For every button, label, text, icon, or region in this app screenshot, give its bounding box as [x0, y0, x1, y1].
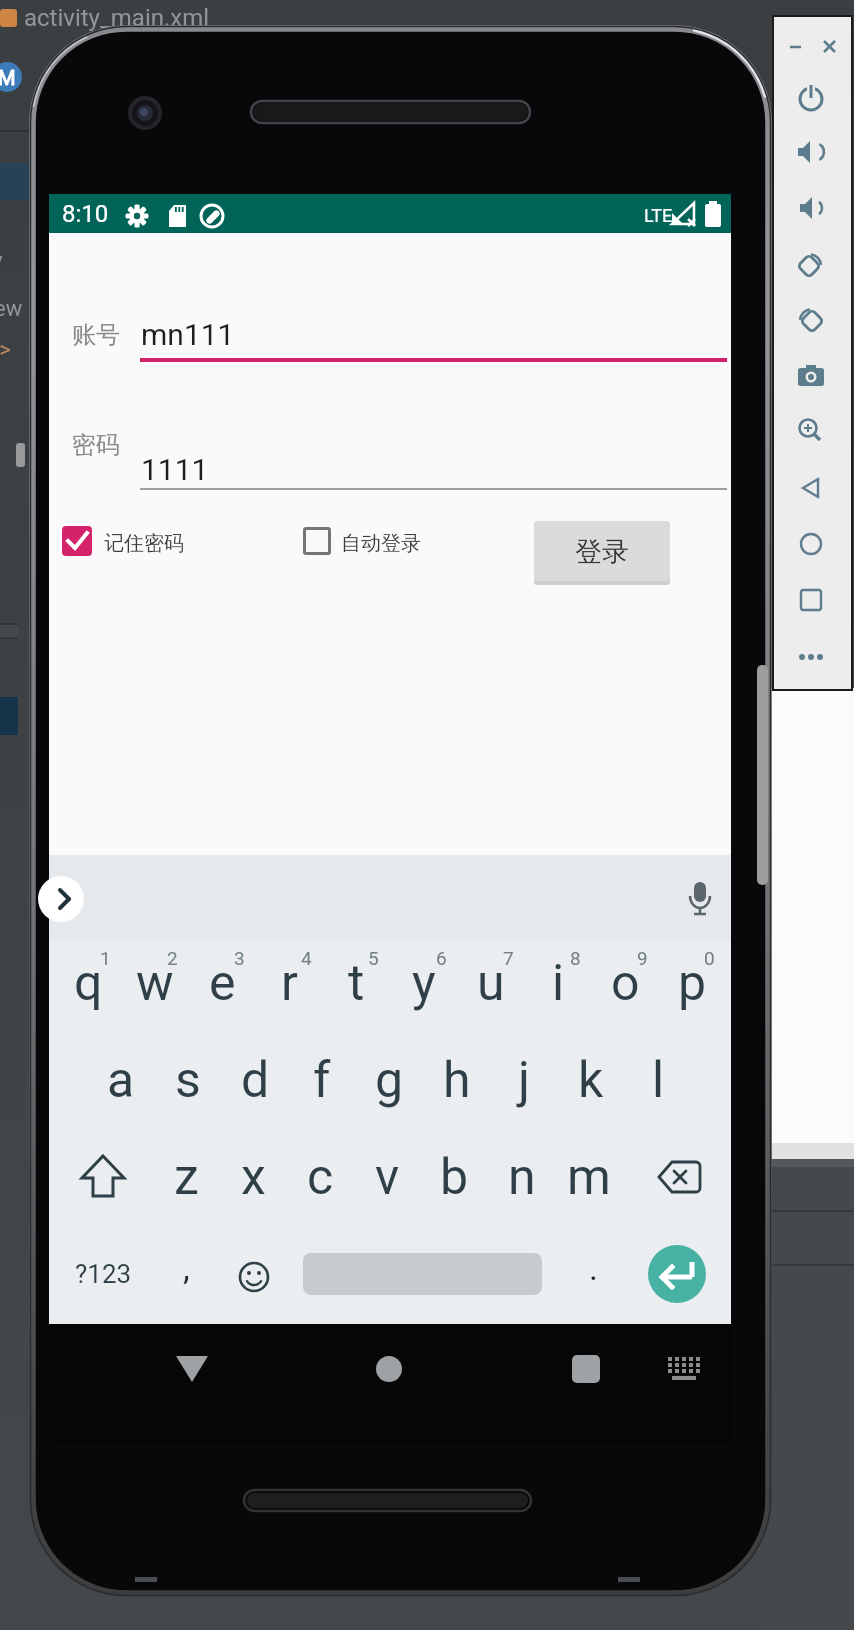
staticText: 1: [100, 947, 111, 969]
button[interactable]: [789, 186, 833, 230]
button[interactable]: [534, 521, 670, 581]
button[interactable]: 1111: [141, 448, 301, 490]
button[interactable]: p: [659, 945, 725, 1021]
button[interactable]: [789, 522, 833, 566]
button[interactable]: ,: [166, 1244, 206, 1292]
button[interactable]: g: [356, 1042, 422, 1118]
button[interactable]: 自动登录: [341, 531, 421, 555]
button[interactable]: [789, 298, 833, 342]
button[interactable]: h: [424, 1042, 490, 1118]
button[interactable]: [648, 1245, 706, 1303]
staticText: z: [174, 1148, 199, 1207]
button[interactable]: e: [189, 945, 255, 1021]
button[interactable]: o: [592, 945, 658, 1021]
staticText: b: [440, 1148, 469, 1207]
staticText: l: [652, 1051, 665, 1110]
staticText: 5: [368, 947, 379, 969]
button[interactable]: a: [88, 1042, 154, 1118]
button[interactable]: u: [458, 945, 524, 1021]
staticText: 3: [234, 947, 245, 969]
staticText: i: [552, 954, 565, 1013]
staticText: x: [241, 1148, 266, 1207]
staticText: mn111: [141, 317, 235, 352]
staticText: ,: [183, 1248, 190, 1288]
button[interactable]: b: [421, 1139, 487, 1215]
button[interactable]: [70, 1147, 136, 1207]
button[interactable]: [303, 527, 331, 555]
button[interactable]: [789, 409, 833, 453]
button[interactable]: k: [558, 1042, 624, 1118]
button[interactable]: i: [525, 945, 591, 1021]
staticText: .: [589, 1248, 598, 1288]
button[interactable]: [789, 242, 833, 286]
button[interactable]: m: [556, 1139, 622, 1215]
button[interactable]: x: [220, 1139, 286, 1215]
staticText: a: [107, 1051, 135, 1110]
button[interactable]: [789, 75, 833, 119]
staticText: y: [412, 954, 436, 1013]
staticText: n: [508, 1148, 536, 1207]
button[interactable]: s: [155, 1042, 221, 1118]
staticText: 自动登录: [341, 531, 421, 555]
button[interactable]: 记住密码: [104, 531, 184, 555]
staticText: o: [611, 954, 640, 1013]
button[interactable]: y: [391, 945, 457, 1021]
staticText: :>: [0, 337, 11, 361]
staticText: e: [209, 954, 236, 1013]
button[interactable]: [789, 635, 833, 679]
button[interactable]: [168, 1344, 216, 1392]
staticText: activity_main.xml: [24, 4, 210, 32]
button[interactable]: v: [354, 1139, 420, 1215]
button[interactable]: n: [489, 1139, 555, 1215]
staticText: d: [241, 1051, 270, 1110]
staticText: ?123: [75, 1259, 132, 1289]
staticText: g: [375, 1051, 404, 1110]
staticText: 6: [436, 947, 447, 969]
button[interactable]: [38, 876, 84, 922]
staticText: q: [74, 954, 103, 1013]
staticText: v: [375, 1148, 400, 1207]
button[interactable]: [562, 1344, 610, 1392]
button[interactable]: w: [122, 945, 188, 1021]
button[interactable]: c: [287, 1139, 353, 1215]
staticText: 2: [167, 947, 178, 969]
button[interactable]: f: [289, 1042, 355, 1118]
button[interactable]: [228, 1251, 280, 1299]
button[interactable]: ?123: [63, 1250, 143, 1298]
button[interactable]: [676, 874, 724, 922]
button[interactable]: .: [573, 1244, 613, 1292]
button[interactable]: r: [256, 945, 322, 1021]
staticText: p: [678, 954, 707, 1013]
staticText: 登录: [575, 535, 629, 569]
button[interactable]: mn111: [141, 313, 301, 355]
staticText: 0: [704, 947, 715, 969]
button[interactable]: d: [222, 1042, 288, 1118]
staticText: w: [136, 954, 174, 1013]
staticText: c: [307, 1148, 334, 1207]
button[interactable]: [789, 353, 833, 397]
button[interactable]: [62, 526, 92, 556]
button[interactable]: [643, 1147, 709, 1207]
staticText: 密码: [72, 430, 120, 458]
button[interactable]: t: [323, 945, 389, 1021]
staticText: m: [567, 1148, 611, 1207]
staticText: h: [443, 1051, 471, 1110]
button[interactable]: q: [55, 945, 121, 1021]
staticText: LTE: [644, 205, 673, 226]
button[interactable]: j: [491, 1042, 557, 1118]
button[interactable]: [789, 578, 833, 622]
button[interactable]: [789, 466, 833, 510]
button[interactable]: [365, 1344, 413, 1392]
staticText: ew: [0, 296, 23, 320]
staticText: 记住密码: [104, 531, 184, 555]
staticText: 账号: [72, 320, 120, 348]
button[interactable]: l: [625, 1042, 691, 1118]
button[interactable]: [789, 130, 833, 174]
staticText: 9: [637, 947, 648, 969]
staticText: 7: [503, 947, 514, 969]
button[interactable]: z: [153, 1139, 219, 1215]
button[interactable]: [660, 1344, 708, 1392]
staticText: 8:10: [62, 200, 109, 228]
